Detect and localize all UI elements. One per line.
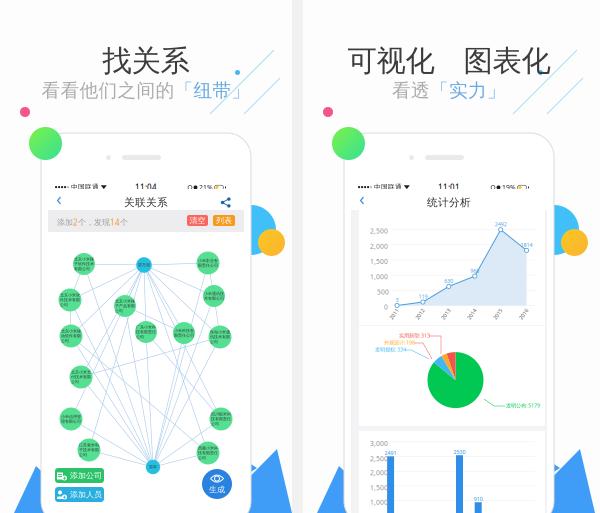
staticText: 广东小米科 技有限责任 公司	[136, 325, 156, 339]
staticText: 14	[110, 217, 120, 228]
staticText: 2012	[414, 310, 426, 318]
staticText: 实用新型: 313	[399, 332, 430, 339]
staticText: 2	[73, 217, 78, 228]
staticText: 2492	[495, 221, 507, 228]
staticText: 小米通讯技 术有限公司	[204, 291, 224, 301]
button[interactable]: 生成	[202, 469, 232, 499]
staticText: 清空	[189, 216, 205, 225]
staticText: 1814	[521, 241, 533, 248]
staticText: 2,500	[370, 454, 388, 463]
staticText: 个	[120, 217, 128, 227]
staticText: 2013	[440, 310, 452, 318]
staticText: 添加公司	[70, 471, 102, 480]
staticText: 500	[377, 287, 389, 296]
staticText: 19%	[502, 183, 516, 192]
button[interactable]: 添加公司	[55, 468, 104, 483]
staticText: 1,000	[370, 498, 388, 507]
staticText: 西藏小米科 技有限责任 公司	[198, 446, 218, 460]
staticText: 2,500	[370, 226, 388, 235]
staticText: 2,000	[370, 242, 388, 251]
staticText: 发明授权: 334	[375, 346, 406, 353]
button[interactable]: Back	[54, 193, 67, 208]
staticText: 看看他们之间的	[41, 79, 174, 102]
staticText: 小米影业有 限责任公司	[198, 258, 218, 268]
staticText: 珠海小米通 讯技术有限 公司	[210, 330, 230, 344]
staticText: 910	[474, 495, 483, 502]
staticText: 看透	[392, 79, 430, 102]
staticText: 江苏紫米电 子技术有限 公司	[79, 443, 99, 457]
staticText: 列表	[216, 216, 232, 225]
staticText: 生成	[209, 485, 225, 494]
staticText: 外观设计: 198	[384, 339, 415, 346]
staticText: 中国联通	[71, 183, 99, 191]
staticText: 630	[444, 277, 453, 284]
staticText: 2011	[388, 310, 400, 318]
staticText: 11:04	[135, 182, 157, 193]
staticText: 个，发现	[78, 217, 110, 227]
staticText: 雷万强	[138, 262, 150, 267]
staticText: 小米信用管 理有限公司	[61, 414, 81, 424]
button[interactable]: Back	[357, 193, 370, 208]
button[interactable]: 列表	[213, 215, 235, 226]
staticText: 3	[395, 296, 398, 304]
button[interactable]: Share	[220, 197, 231, 208]
staticText: 11:01	[438, 182, 460, 193]
staticText: 北京小米移 子产品有限 公司	[115, 299, 135, 313]
staticText: 可视化 图表化	[347, 43, 550, 79]
staticText: 2016	[518, 310, 530, 318]
staticText: 找关系	[102, 43, 189, 79]
staticText: 2014	[466, 310, 478, 318]
staticText: 2491	[385, 449, 397, 457]
button[interactable]: 清空	[187, 215, 208, 226]
staticText: 「纽带」	[174, 79, 250, 102]
staticText: 添加	[57, 217, 73, 227]
staticText: 小米科技有 限责任公司	[174, 328, 194, 338]
staticText: 「实力」	[430, 79, 506, 102]
staticText: 北京小米移 动软件有限 公司	[61, 329, 81, 343]
staticText: 119	[418, 293, 427, 300]
staticText: 3,000	[370, 439, 388, 448]
staticText: 雷军	[149, 464, 157, 469]
staticText: 发明公布: 5179	[506, 402, 540, 409]
button[interactable]: 添加人员	[55, 487, 104, 502]
staticText: 1,000	[370, 272, 388, 281]
staticText: 1,500	[370, 483, 388, 492]
staticText: 添加人员	[70, 490, 102, 499]
staticText: 北京小米软 件技术有限 公司	[60, 293, 80, 307]
staticText: 21%	[199, 183, 213, 192]
staticText: 关联关系	[124, 196, 168, 209]
staticText: 1,500	[370, 257, 388, 266]
staticText: 2015	[492, 310, 504, 318]
staticText: 统计分析	[427, 196, 471, 209]
staticText: 北京小米移 子软件技术 有限公司	[74, 257, 94, 271]
staticText: 北京小米支 付技术有限 公司	[71, 370, 91, 384]
staticText: 0	[384, 303, 388, 311]
staticText: 2,000	[370, 468, 388, 477]
staticText: 968	[470, 267, 479, 274]
staticText: 2530	[453, 448, 465, 455]
staticText: 中国联通	[374, 183, 402, 191]
staticText: 四川银米科 技有限责任 公司	[211, 412, 231, 426]
